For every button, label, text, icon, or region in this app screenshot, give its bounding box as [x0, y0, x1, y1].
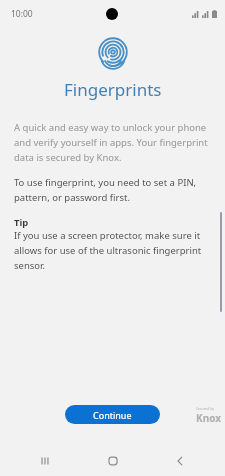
button[interactable]: Recent apps: [23, 445, 67, 476]
staticText: If you use a screen protector, make sure…: [14, 229, 211, 272]
staticText: Secured by: [196, 406, 215, 411]
staticText: Knox: [196, 411, 221, 425]
button[interactable]: Home: [91, 445, 135, 476]
button[interactable]: Continue: [65, 405, 160, 424]
staticText: Fingerprints: [64, 78, 162, 101]
staticText: 10:00: [11, 8, 33, 20]
staticText: Continue: [93, 409, 132, 421]
staticText: To use fingerprint, you need to set a PI…: [14, 176, 211, 204]
button[interactable]: Back: [158, 445, 202, 476]
staticText: Tip: [14, 216, 29, 229]
staticText: A quick and easy way to unlock your phon…: [14, 121, 211, 164]
